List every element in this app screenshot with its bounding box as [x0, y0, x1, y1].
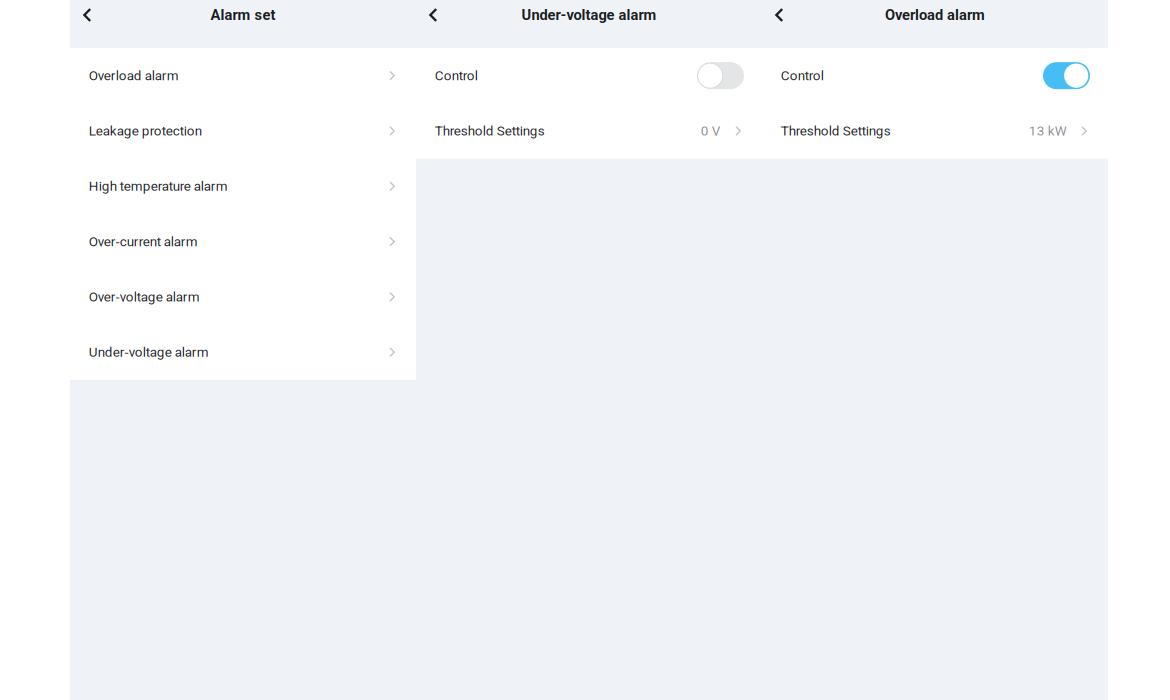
button[interactable]: Over-current alarm [70, 214, 416, 269]
button[interactable]: Overload alarm [70, 48, 416, 103]
button[interactable]: Back [70, 0, 112, 30]
button[interactable]: Leakage protection [70, 103, 416, 159]
button[interactable]: Threshold Settings [416, 103, 762, 159]
button[interactable]: Control, on [1043, 62, 1090, 89]
staticText: Control [781, 68, 824, 84]
staticText: Over-voltage alarm [89, 289, 200, 305]
staticText: Overload alarm [89, 68, 179, 84]
staticText: Under-voltage alarm [521, 6, 656, 24]
staticText: 0 V [701, 123, 721, 139]
staticText: Leakage protection [89, 123, 202, 139]
staticText: Threshold Settings [781, 123, 891, 139]
button[interactable]: Back [762, 0, 804, 30]
button[interactable]: High temperature alarm [70, 159, 416, 214]
button[interactable]: Back [416, 0, 458, 30]
staticText: Control [435, 68, 478, 84]
button[interactable]: Threshold Settings [762, 103, 1108, 159]
staticText: High temperature alarm [89, 178, 228, 194]
staticText: 13 kW [1029, 123, 1067, 139]
staticText: Overload alarm [885, 6, 985, 24]
staticText: Over-current alarm [89, 234, 198, 249]
staticText: Threshold Settings [435, 123, 545, 139]
button[interactable]: Over-voltage alarm [70, 269, 416, 324]
button[interactable]: Control, off [697, 62, 744, 89]
staticText: Under-voltage alarm [89, 344, 209, 360]
button[interactable]: Under-voltage alarm [70, 324, 416, 380]
staticText: Alarm set [210, 6, 275, 24]
